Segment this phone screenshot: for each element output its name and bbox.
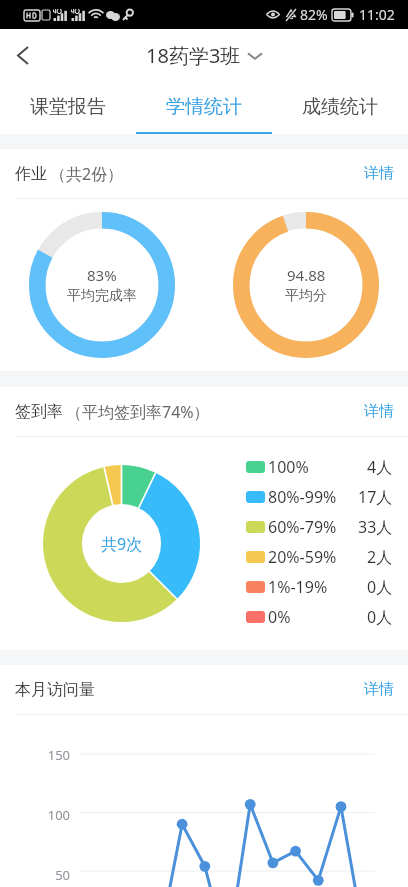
staticText: 平均完成率 xyxy=(67,287,137,305)
staticText: 20%-59% xyxy=(268,546,337,568)
staticText: 详情 xyxy=(364,680,394,699)
button[interactable]: 20%-59% xyxy=(246,542,393,572)
button[interactable]: 1%-19% xyxy=(246,572,393,602)
button[interactable]: 100% xyxy=(246,452,393,482)
staticText: 80%-99% xyxy=(268,486,337,508)
staticText: 0人 xyxy=(367,606,393,628)
button[interactable]: 成绩统计 xyxy=(272,82,408,134)
staticText: 82% xyxy=(300,5,328,24)
staticText: 学情统计 xyxy=(166,95,242,119)
staticText: 0人 xyxy=(367,576,393,598)
staticText: 1%-19% xyxy=(268,576,328,598)
staticText: 本月访问量 xyxy=(15,680,95,700)
button[interactable]: 80%-99% xyxy=(246,482,393,512)
staticText: 2人 xyxy=(367,546,393,568)
staticText: 签到率 xyxy=(15,402,63,422)
staticText: （共2份） xyxy=(50,163,124,185)
staticText: 100 xyxy=(0,806,70,824)
staticText: 60%-79% xyxy=(268,516,337,538)
staticText: 课堂报告 xyxy=(30,95,106,119)
staticText: 4人 xyxy=(367,456,393,478)
button[interactable]: Back xyxy=(0,29,46,82)
staticText: 18药学3班 xyxy=(146,42,241,69)
button[interactable]: 详情 xyxy=(364,680,394,699)
staticText: 成绩统计 xyxy=(302,95,378,119)
staticText: 17人 xyxy=(358,486,393,508)
button[interactable]: 详情 xyxy=(364,164,394,183)
staticText: 50 xyxy=(0,866,70,884)
staticText: 作业 xyxy=(15,164,47,184)
staticText: 详情 xyxy=(364,402,394,421)
staticText: 100% xyxy=(268,456,309,478)
button[interactable]: 课堂报告 xyxy=(0,82,136,134)
staticText: 0% xyxy=(268,606,291,628)
button[interactable]: 0% xyxy=(246,602,393,632)
button[interactable]: 详情 xyxy=(364,402,394,421)
staticText: 33人 xyxy=(358,516,393,538)
staticText: 详情 xyxy=(364,164,394,183)
button[interactable]: 18药学3班 xyxy=(146,42,262,69)
staticText: 94.88 xyxy=(287,265,326,285)
staticText: （平均签到率74%） xyxy=(66,401,210,423)
button[interactable]: 60%-79% xyxy=(246,512,393,542)
button[interactable]: 学情统计 xyxy=(136,82,272,134)
staticText: 11:02 xyxy=(359,5,395,24)
staticText: 83% xyxy=(87,265,117,285)
staticText: 平均分 xyxy=(285,287,327,305)
staticText: 150 xyxy=(0,746,70,764)
staticText: 共9次 xyxy=(101,533,143,555)
